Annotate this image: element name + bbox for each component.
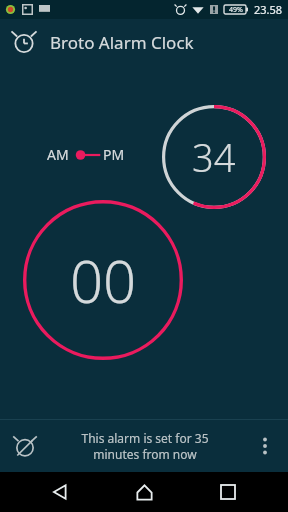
staticText: 49% bbox=[229, 5, 243, 15]
staticText: 00 bbox=[70, 241, 137, 320]
staticText: Broto Alarm Clock bbox=[50, 31, 194, 54]
button[interactable]: Back bbox=[36, 472, 84, 512]
staticText: PM bbox=[103, 145, 125, 164]
button[interactable]: Alarm bbox=[10, 28, 38, 56]
button[interactable]: Alarm off bbox=[10, 431, 40, 461]
button[interactable]: 34 bbox=[162, 105, 266, 209]
button[interactable]: Recent apps bbox=[204, 472, 252, 512]
button[interactable]: 00 bbox=[23, 200, 183, 360]
staticText: This alarm is set for 35 minutes from no… bbox=[65, 430, 225, 462]
staticText: AM bbox=[47, 145, 69, 164]
staticText: 34 bbox=[192, 131, 236, 183]
button[interactable]: More options bbox=[250, 431, 280, 461]
staticText: 23.58 bbox=[254, 2, 283, 17]
button[interactable]: Home bbox=[120, 472, 168, 512]
button[interactable]: AM bbox=[47, 145, 125, 164]
